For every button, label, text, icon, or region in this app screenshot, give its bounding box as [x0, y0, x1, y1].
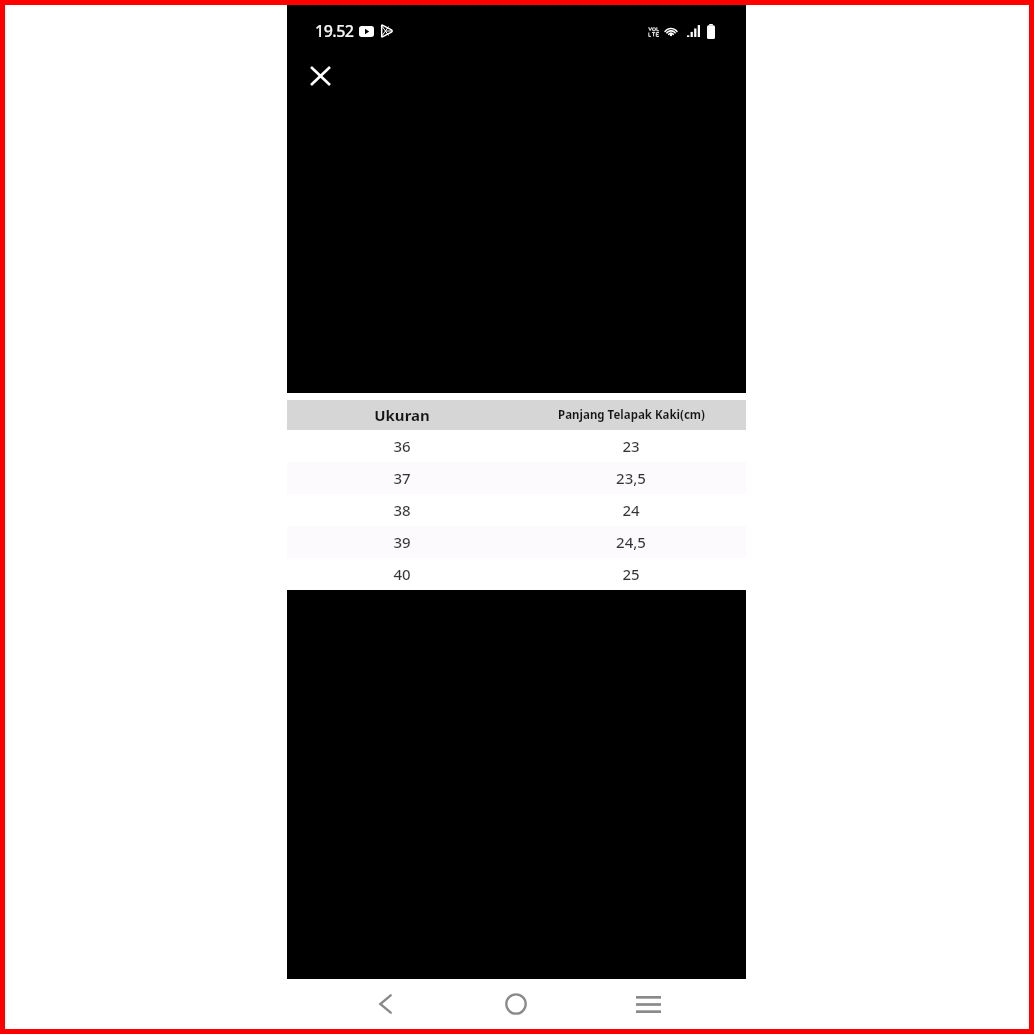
button[interactable]: 40 — [287, 558, 746, 590]
button[interactable]: Recent apps — [592, 979, 704, 1029]
button[interactable]: Home — [460, 979, 572, 1029]
button[interactable]: 37 — [287, 462, 746, 494]
staticText: 19.52 — [315, 20, 354, 42]
staticText: 24,5 — [616, 532, 646, 552]
staticText: Panjang Telapak Kaki(cm) — [558, 407, 705, 423]
staticText: 23 — [622, 436, 640, 456]
staticText: 39 — [393, 532, 411, 552]
staticText: 38 — [393, 500, 411, 520]
button[interactable]: 36 — [287, 430, 746, 462]
staticText: 24 — [622, 500, 640, 520]
button[interactable]: Close — [295, 50, 346, 101]
staticText: 37 — [393, 468, 411, 488]
staticText: 36 — [393, 436, 411, 456]
button[interactable]: 39 — [287, 526, 746, 558]
button[interactable]: 38 — [287, 494, 746, 526]
staticText: Ukuran — [374, 405, 430, 425]
staticText: 23,5 — [616, 468, 646, 488]
button[interactable]: Back — [329, 979, 441, 1029]
staticText: 40 — [393, 564, 411, 584]
staticText: 25 — [622, 564, 640, 584]
